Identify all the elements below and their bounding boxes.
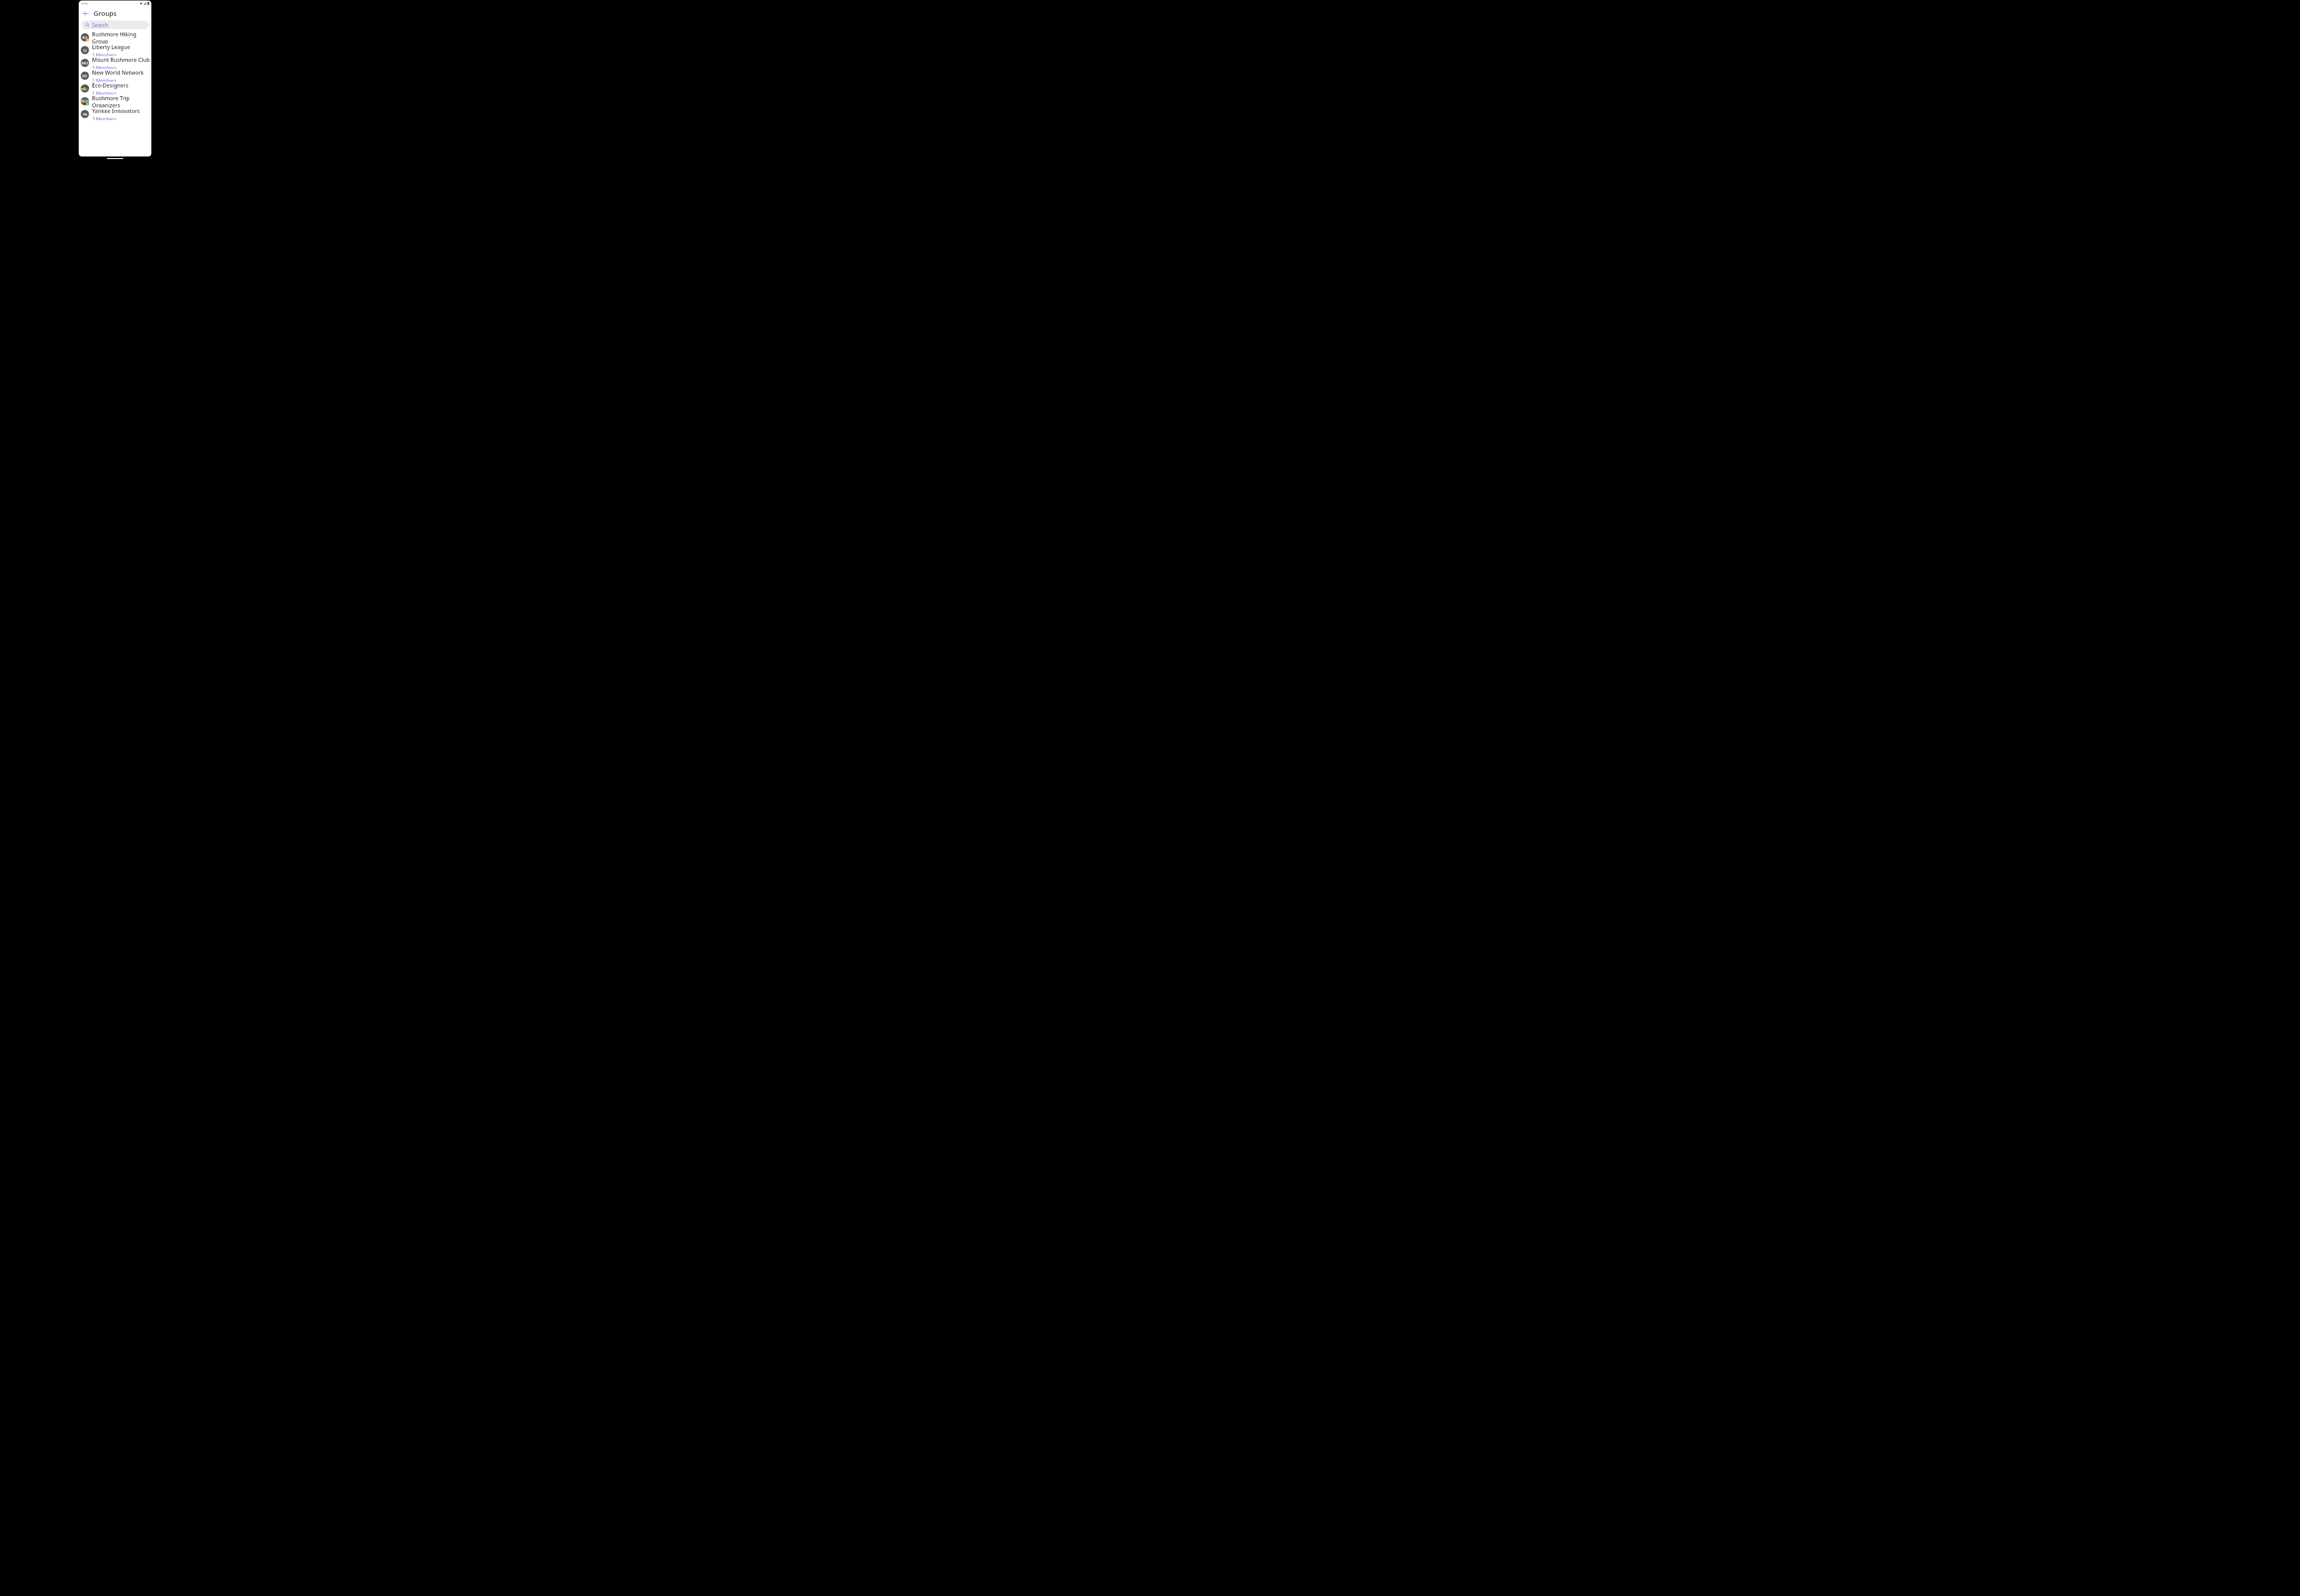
staticText: 1 Members <box>92 90 117 95</box>
button[interactable]: NE <box>79 69 151 82</box>
button[interactable]: YA <box>79 107 151 120</box>
staticText: Search <box>92 21 108 29</box>
staticText: Rushmore Hiking Group <box>92 31 151 43</box>
button[interactable]: Back <box>81 8 91 18</box>
button[interactable]: Eco-Designers <box>79 82 151 95</box>
staticText: RU <box>82 35 87 40</box>
staticText: New World Network <box>92 69 144 76</box>
staticText: 2 Members <box>92 52 117 56</box>
staticText: LI <box>83 48 87 53</box>
staticText: 3 Members <box>92 64 117 69</box>
button[interactable]: RU <box>79 31 151 43</box>
staticText: MO <box>82 60 88 65</box>
staticText: Yankee Innovators <box>92 107 140 115</box>
button[interactable]: Rushmore Trip Organizers <box>79 95 151 107</box>
staticText: Rushmore Trip Organizers <box>92 95 151 107</box>
staticText: Eco-Designers <box>92 82 129 89</box>
staticText: Groups <box>94 9 117 18</box>
button[interactable]: Search <box>81 20 149 29</box>
staticText: 2 Members <box>92 77 117 82</box>
staticText: YA <box>83 111 87 117</box>
staticText: Mount Rushmore Club <box>92 56 150 63</box>
button[interactable]: MO <box>79 56 151 69</box>
staticText: Liberty League <box>92 43 130 51</box>
button[interactable]: LI <box>79 43 151 56</box>
staticText: NE <box>82 73 87 78</box>
staticText: 3 Members <box>92 116 117 120</box>
staticText: 4:54 <box>81 2 87 6</box>
